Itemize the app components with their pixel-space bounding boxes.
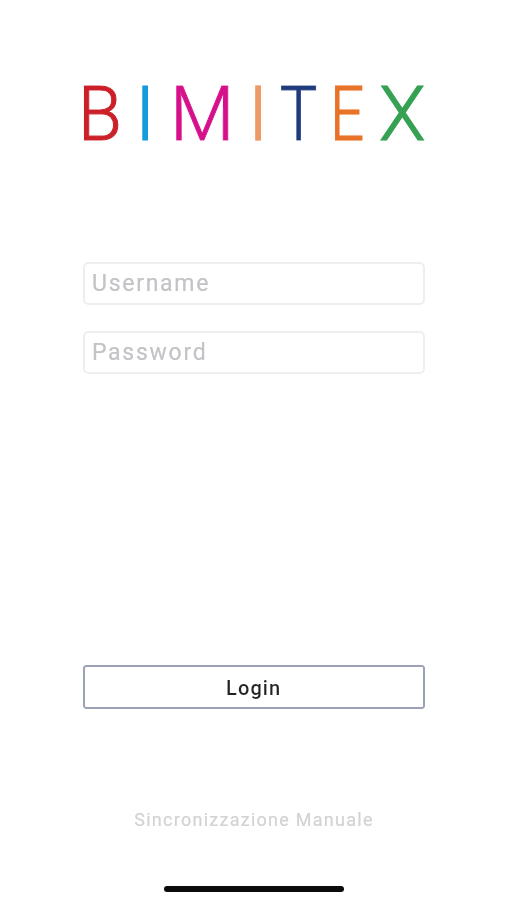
staticText: I (135, 69, 156, 158)
staticText: Login (226, 676, 282, 699)
staticText: Sincronizzazione Manuale (134, 809, 374, 830)
staticText: E (330, 69, 365, 158)
button[interactable]: Sincronizzazione Manuale (129, 803, 378, 835)
staticText: B (78, 69, 122, 158)
staticText: X (379, 69, 426, 158)
staticText: I (248, 69, 269, 158)
staticText: T (280, 69, 318, 158)
button[interactable]: Username (83, 262, 425, 305)
staticText: I (248, 69, 269, 158)
button[interactable]: Login (83, 665, 425, 709)
button[interactable]: Password (83, 331, 425, 374)
staticText: M (170, 69, 235, 158)
staticText: T (280, 69, 318, 158)
staticText: Username (92, 270, 211, 297)
staticText: X (379, 69, 426, 158)
staticText: B (78, 69, 122, 158)
other: BIMITEX (83, 85, 425, 141)
staticText: Password (92, 339, 208, 366)
staticText: E (330, 69, 365, 158)
staticText: M (170, 69, 235, 158)
staticText: I (135, 69, 156, 158)
